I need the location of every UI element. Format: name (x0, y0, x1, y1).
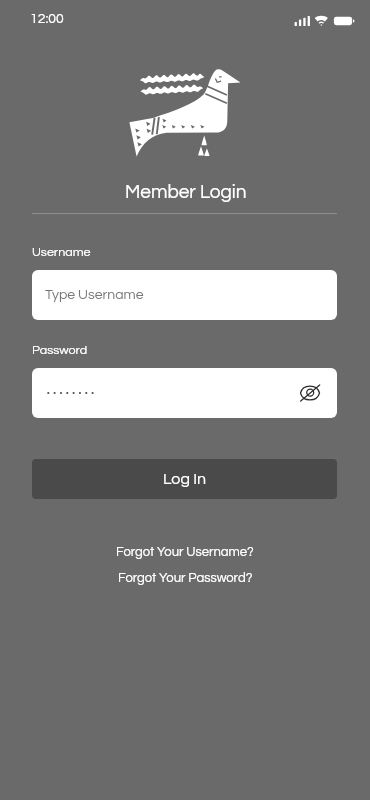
staticText: Username (32, 246, 91, 259)
staticText: Forgot Your Password? (118, 571, 253, 584)
button[interactable]: Type Username (32, 270, 337, 320)
button[interactable]: Show password (293, 376, 327, 410)
staticText: Log In (163, 471, 207, 487)
staticText: Password (32, 344, 88, 357)
staticText: 12:00 (30, 12, 64, 26)
staticText: Type Username (45, 288, 144, 302)
button[interactable]: Log In (32, 459, 337, 499)
staticText: Forgot Your Username? (116, 545, 254, 558)
button[interactable]: Forgot Your Password? (112, 569, 259, 586)
button[interactable]: Forgot Your Username? (110, 543, 260, 560)
button[interactable]: Show password (32, 368, 337, 418)
staticText: Member Login (125, 182, 247, 202)
